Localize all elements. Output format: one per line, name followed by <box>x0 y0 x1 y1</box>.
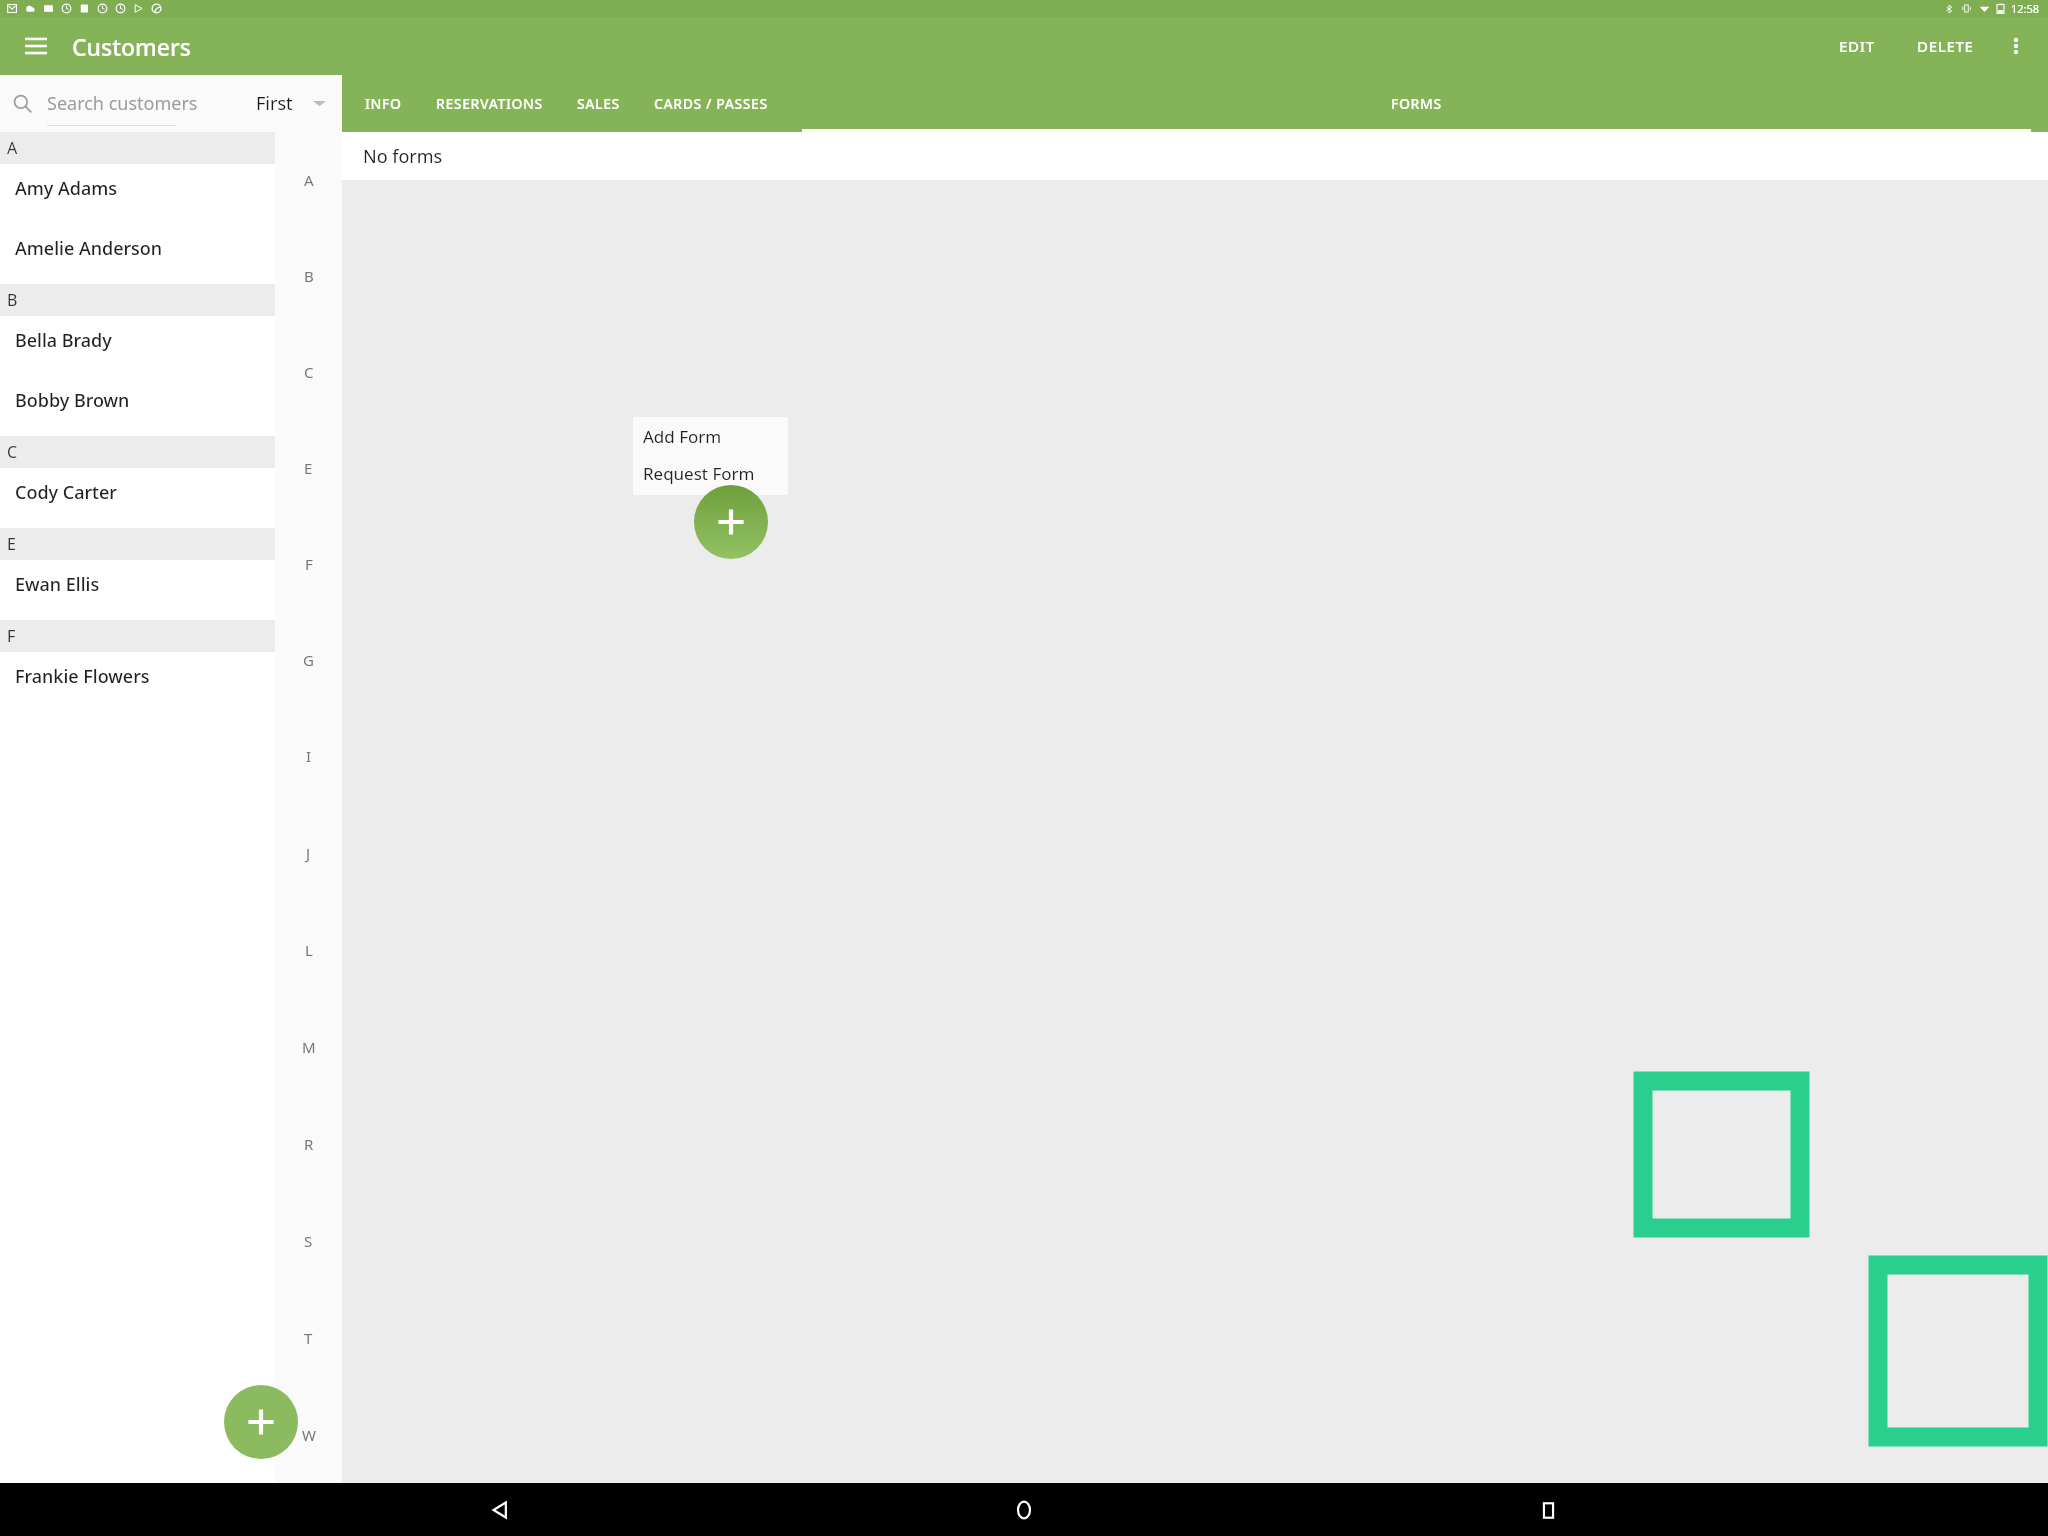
staticText: DELETE <box>1917 36 1974 56</box>
button[interactable]: T <box>275 1289 342 1386</box>
button[interactable]: INFO <box>348 75 419 132</box>
staticText: M <box>302 1037 316 1057</box>
button[interactable]: Search customers <box>0 75 248 132</box>
button[interactable]: J <box>275 804 342 901</box>
staticText: FORMS <box>1391 94 1442 113</box>
staticText: SALES <box>577 94 620 113</box>
staticText: R <box>304 1134 314 1154</box>
staticText: Add Form <box>643 425 722 448</box>
staticText: S <box>304 1231 313 1251</box>
staticText: Request Form <box>643 462 755 485</box>
button[interactable]: I <box>275 708 342 804</box>
staticText: CARDS / PASSES <box>654 94 768 113</box>
staticText: L <box>305 940 313 960</box>
staticText: F <box>305 554 313 574</box>
staticText: First <box>256 91 293 116</box>
button[interactable]: Add <box>694 485 768 559</box>
button[interactable]: W <box>275 1386 342 1483</box>
button[interactable]: C <box>275 324 342 420</box>
staticText: RESERVATIONS <box>436 94 543 113</box>
staticText: B <box>7 289 18 311</box>
button[interactable]: A <box>275 132 342 228</box>
staticText: E <box>7 533 16 555</box>
button[interactable]: Recent apps <box>1525 1487 1571 1533</box>
button[interactable]: CARDS / PASSES <box>637 75 785 132</box>
button[interactable]: Back <box>478 1487 524 1533</box>
button[interactable]: Request Form <box>633 455 788 492</box>
button[interactable]: Frankie Flowers <box>0 652 275 712</box>
staticText: A <box>304 170 314 190</box>
button[interactable]: First <box>248 75 342 132</box>
staticText: Cody Carter <box>15 480 117 505</box>
staticText: Amelie Anderson <box>15 236 163 261</box>
button[interactable]: More options <box>1996 26 2036 66</box>
staticText: W <box>302 1425 316 1445</box>
staticText: No forms <box>363 144 443 169</box>
staticText: F <box>7 625 16 647</box>
button[interactable]: Home <box>1001 1487 1047 1533</box>
button[interactable]: Add customer <box>224 1385 298 1459</box>
button[interactable]: M <box>275 998 342 1095</box>
staticText: 12:58 <box>2011 1 2040 16</box>
button[interactable]: S <box>275 1192 342 1289</box>
staticText: E <box>304 458 313 478</box>
button[interactable]: Open navigation menu <box>16 26 56 66</box>
staticText: Customers <box>72 31 191 62</box>
staticText: J <box>306 843 311 863</box>
button[interactable]: Bella Brady <box>0 316 275 376</box>
button[interactable]: Ewan Ellis <box>0 560 275 620</box>
staticText: B <box>304 266 314 286</box>
staticText: C <box>7 441 18 463</box>
button[interactable]: EDIT <box>1825 26 1889 66</box>
staticText: I <box>306 746 312 766</box>
button[interactable]: L <box>275 901 342 998</box>
staticText: EDIT <box>1839 36 1875 56</box>
staticText: INFO <box>365 94 402 113</box>
staticText: Bella Brady <box>15 328 112 353</box>
button[interactable]: Amelie Anderson <box>0 224 275 284</box>
staticText: C <box>304 362 314 382</box>
staticText: T <box>304 1328 313 1348</box>
staticText: Ewan Ellis <box>15 572 100 597</box>
button[interactable]: RESERVATIONS <box>419 75 560 132</box>
button[interactable]: R <box>275 1095 342 1192</box>
button[interactable]: Amy Adams <box>0 164 275 224</box>
button[interactable]: DELETE <box>1903 26 1988 66</box>
staticText: Search customers <box>47 91 198 116</box>
staticText: Bobby Brown <box>15 388 130 413</box>
button[interactable]: F <box>275 516 342 612</box>
staticText: G <box>303 650 314 670</box>
button[interactable]: Bobby Brown <box>0 376 275 436</box>
button[interactable]: E <box>275 420 342 516</box>
staticText: Frankie Flowers <box>15 664 150 689</box>
button[interactable]: G <box>275 612 342 708</box>
staticText: A <box>7 137 18 159</box>
button[interactable]: Cody Carter <box>0 468 275 528</box>
button[interactable]: SALES <box>560 75 637 132</box>
button[interactable]: FORMS <box>785 75 2048 132</box>
button[interactable]: Add Form <box>633 417 788 455</box>
staticText: Amy Adams <box>15 176 118 201</box>
button[interactable]: B <box>275 228 342 324</box>
